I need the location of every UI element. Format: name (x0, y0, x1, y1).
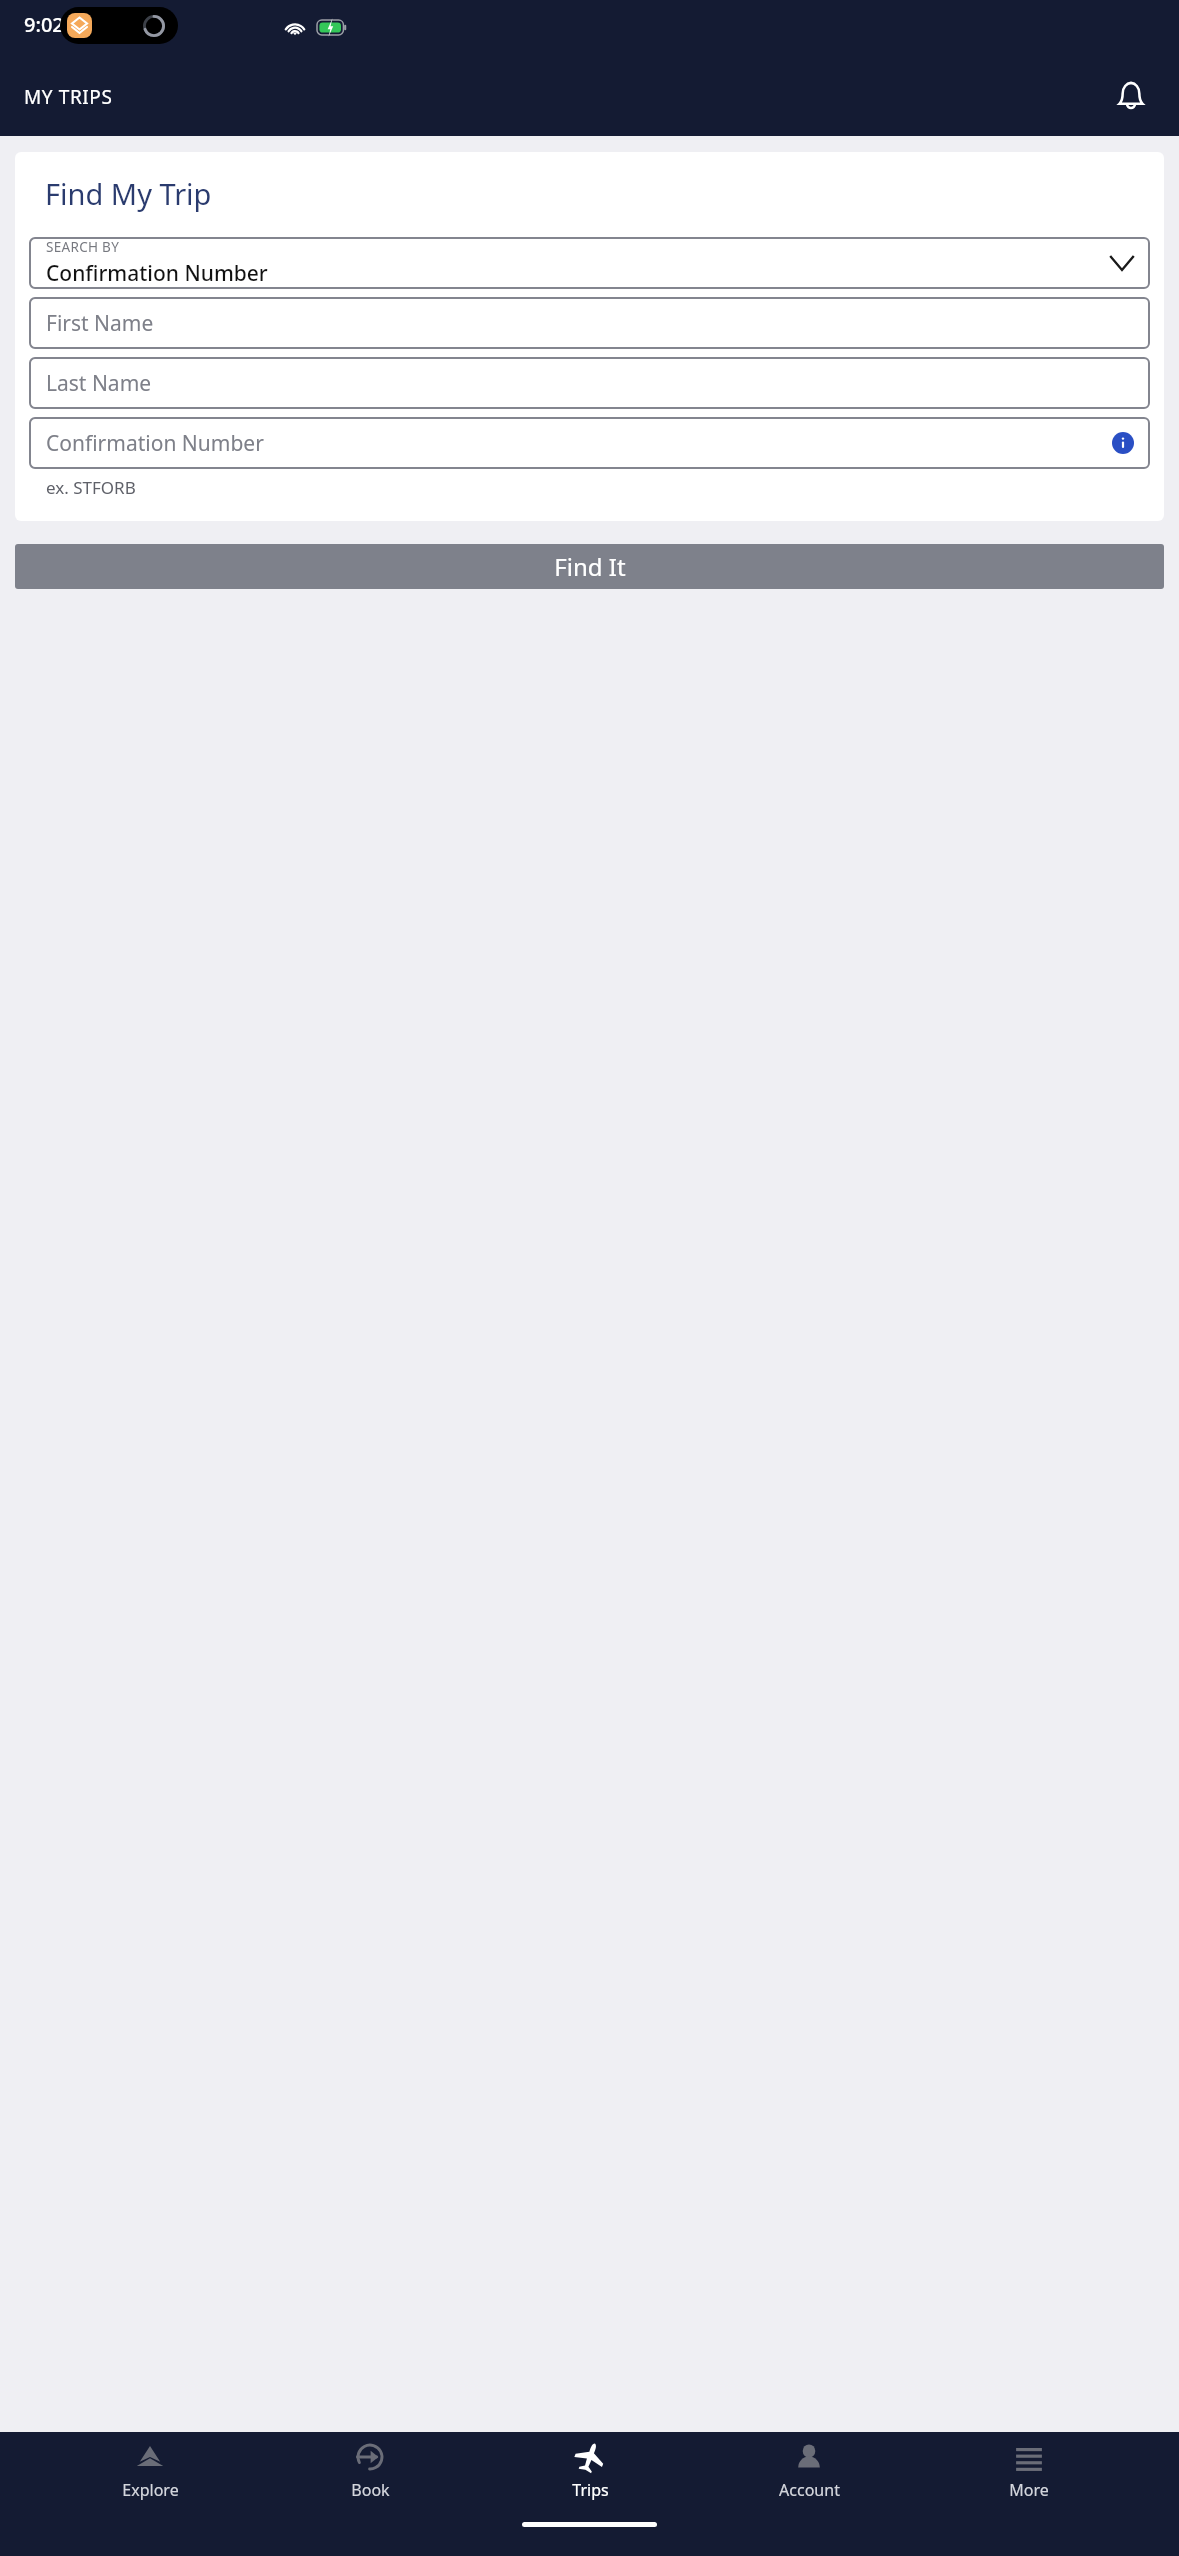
staticText: Find It (554, 550, 626, 583)
staticText: Last Name (46, 369, 152, 398)
staticText: Trips (572, 2479, 609, 2501)
staticText: Find My Trip (45, 174, 212, 213)
staticText: Book (351, 2479, 390, 2501)
staticText: More (1009, 2479, 1049, 2501)
button[interactable]: First Name (29, 297, 1150, 349)
staticText: MY TRIPS (24, 84, 113, 110)
button[interactable]: Explore (80, 2438, 220, 2505)
button[interactable]: Trips (520, 2438, 660, 2505)
staticText: Confirmation Number (46, 429, 264, 458)
staticText: Account (779, 2479, 840, 2501)
staticText: First Name (46, 309, 154, 338)
button[interactable]: Last Name (29, 357, 1150, 409)
button[interactable]: Confirmation number help (1110, 430, 1136, 456)
button[interactable]: Find It (15, 544, 1164, 589)
staticText: ex. STFORB (46, 476, 136, 499)
staticText: Confirmation Number (46, 259, 268, 288)
button[interactable]: SEARCH BY (29, 237, 1150, 289)
staticText: Explore (122, 2479, 179, 2501)
staticText: 9:02 (24, 11, 64, 38)
staticText: SEARCH BY (46, 238, 120, 256)
button[interactable]: Notifications (1107, 73, 1155, 121)
button[interactable]: Confirmation Number (29, 417, 1150, 469)
button[interactable]: Account (739, 2438, 879, 2505)
button[interactable]: More (959, 2438, 1099, 2505)
button[interactable]: Book (300, 2438, 440, 2505)
